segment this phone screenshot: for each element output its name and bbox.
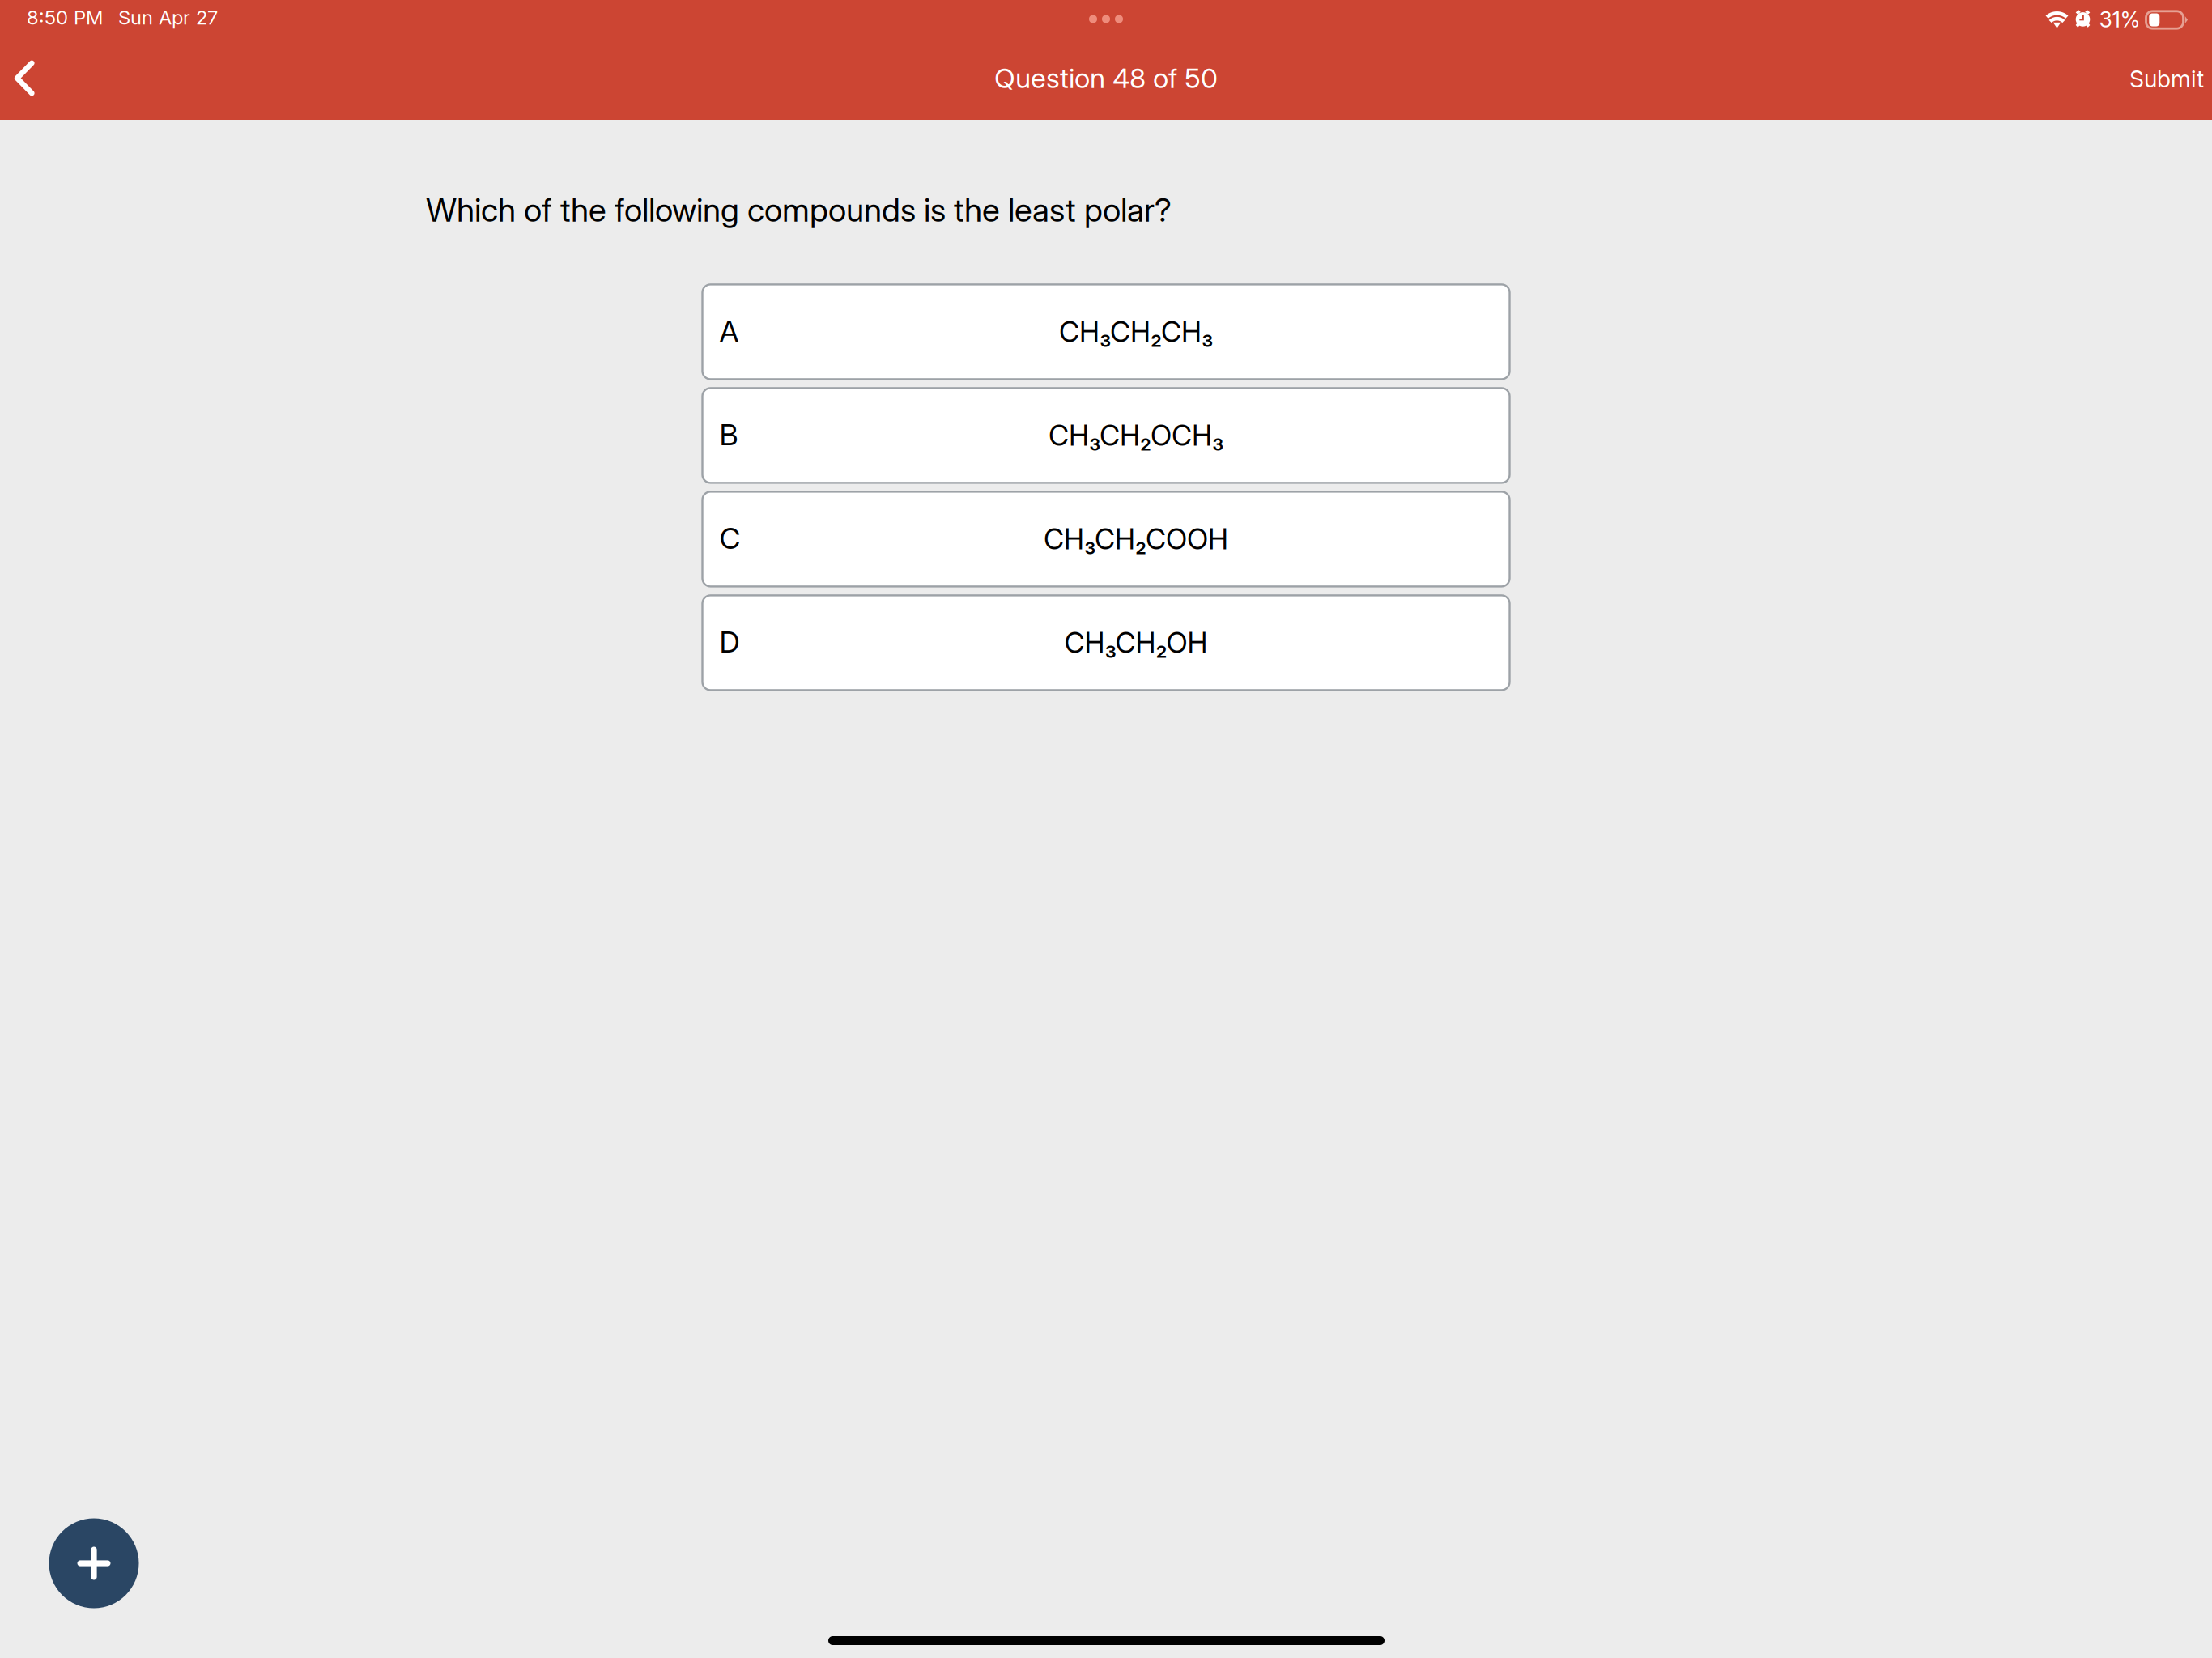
button[interactable]: Submit bbox=[2121, 40, 2212, 116]
staticText: 8:50 PM bbox=[27, 6, 103, 29]
staticText: Sun Apr 27 bbox=[118, 6, 218, 29]
button[interactable]: C bbox=[702, 492, 1510, 586]
staticText: B bbox=[719, 417, 738, 452]
staticText: Submit bbox=[2129, 65, 2204, 93]
staticText: CH₃CH₂COOH bbox=[1044, 522, 1228, 556]
button[interactable]: A bbox=[702, 284, 1510, 379]
button[interactable]: D bbox=[702, 595, 1510, 690]
staticText: CH₃CH₂OH bbox=[1064, 626, 1208, 660]
staticText: CH₃CH₂OCH₃ bbox=[1049, 418, 1223, 452]
staticText: D bbox=[719, 624, 740, 660]
staticText: CH₃CH₂CH₃ bbox=[1059, 315, 1213, 349]
button[interactable]: Add bbox=[49, 1518, 139, 1608]
button[interactable]: Back bbox=[0, 40, 49, 116]
staticText: Which of the following compounds is the … bbox=[426, 190, 1172, 229]
button[interactable]: B bbox=[702, 388, 1510, 483]
staticText: 31% bbox=[2099, 6, 2140, 33]
staticText: Question 48 of 50 bbox=[994, 61, 1218, 95]
staticText: A bbox=[719, 313, 739, 349]
staticText: C bbox=[719, 521, 740, 556]
